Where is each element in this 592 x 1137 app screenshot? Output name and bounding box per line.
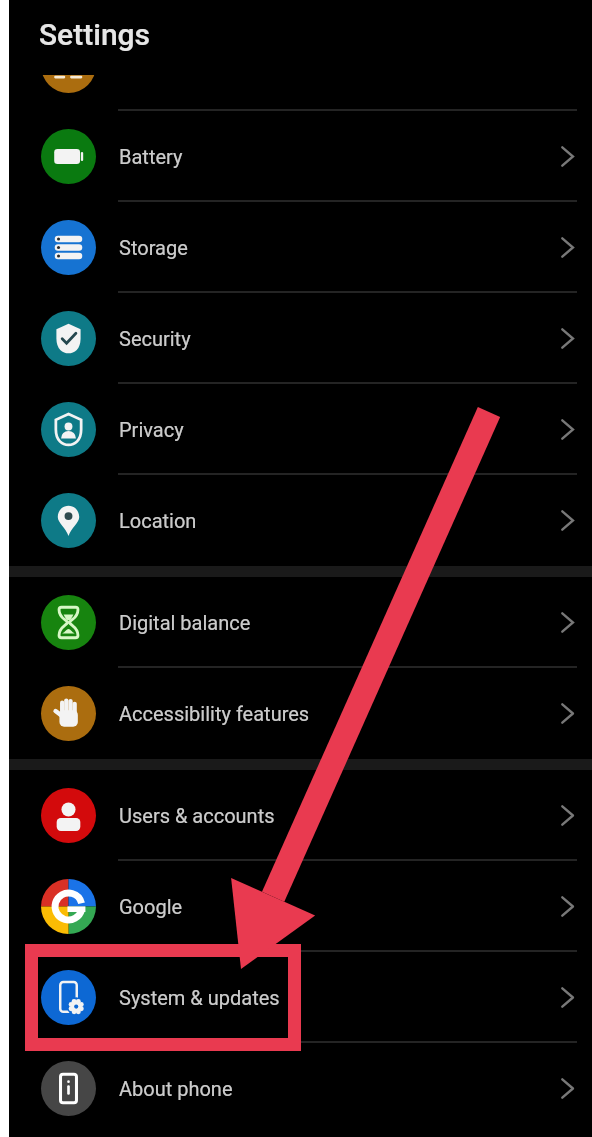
button[interactable]: Google (0, 861, 592, 952)
staticText: System & updates (119, 986, 280, 1009)
staticText: Battery (119, 145, 183, 168)
button[interactable]: Storage (0, 202, 592, 293)
staticText: Accessibility features (119, 702, 310, 725)
button[interactable]: Digital balance (0, 577, 592, 668)
staticText: Security (119, 327, 191, 350)
staticText: Privacy (119, 418, 184, 441)
button[interactable]: Battery (0, 111, 592, 202)
button[interactable]: Location (0, 475, 592, 566)
staticText: Settings (39, 17, 151, 52)
button[interactable]: Security (0, 293, 592, 384)
staticText: Digital balance (119, 611, 251, 634)
button[interactable]: Privacy (0, 384, 592, 475)
staticText: Storage (119, 236, 188, 259)
button[interactable]: About phone (0, 1043, 592, 1134)
button[interactable]: System & updates (0, 952, 592, 1043)
button[interactable]: Users & accounts (0, 770, 592, 861)
staticText: Users & accounts (119, 804, 275, 827)
staticText: About phone (119, 1077, 233, 1100)
button[interactable]: Accessibility features (0, 668, 592, 759)
staticText: Google (119, 895, 183, 918)
staticText: Location (119, 509, 197, 532)
